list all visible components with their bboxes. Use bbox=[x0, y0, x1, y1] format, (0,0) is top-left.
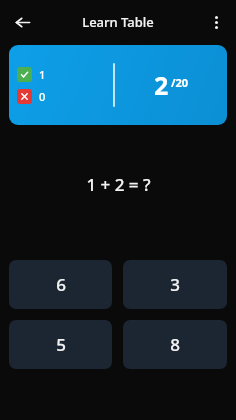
staticText: 3 bbox=[170, 273, 180, 296]
staticText: 8 bbox=[170, 333, 180, 356]
staticText: 1 + 2 = ? bbox=[86, 173, 151, 196]
staticText: 6 bbox=[56, 273, 66, 296]
staticText: Learn Table bbox=[82, 13, 154, 31]
button[interactable]: 1 bbox=[9, 45, 227, 125]
staticText: 5 bbox=[56, 333, 66, 356]
button[interactable]: 5 bbox=[9, 320, 112, 369]
staticText: 1 bbox=[39, 67, 46, 82]
button[interactable]: 8 bbox=[123, 320, 227, 369]
button[interactable]: Back bbox=[6, 6, 38, 38]
button[interactable]: 3 bbox=[123, 260, 227, 309]
staticText: 0 bbox=[39, 89, 46, 104]
button[interactable]: 6 bbox=[9, 260, 112, 309]
button[interactable]: More options bbox=[201, 7, 231, 37]
staticText: 2 bbox=[154, 68, 169, 102]
staticText: /20 bbox=[171, 75, 189, 90]
